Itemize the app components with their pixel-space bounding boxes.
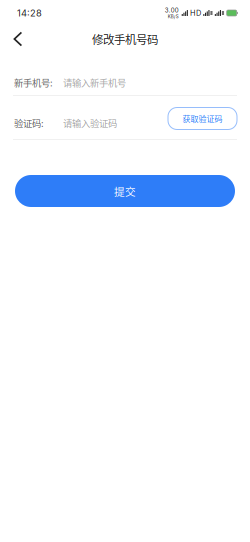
button[interactable]: 获取验证码 xyxy=(168,105,237,129)
staticText: 3.00 xyxy=(165,6,179,14)
staticText: KB/S xyxy=(168,14,179,19)
staticText: 新手机号: xyxy=(14,76,53,89)
staticText: 14:28 xyxy=(17,7,42,19)
staticText: 验证码: xyxy=(14,116,44,130)
staticText: HD xyxy=(190,8,201,17)
staticText: 请输入验证码 xyxy=(63,116,117,130)
staticText: 请输入新手机号 xyxy=(63,76,126,89)
button[interactable]: 提交 xyxy=(15,175,235,207)
staticText: 获取验证码 xyxy=(182,113,222,124)
button[interactable]: Back xyxy=(0,26,34,52)
staticText: 修改手机号码 xyxy=(92,31,158,47)
staticText: 提交 xyxy=(114,183,136,199)
